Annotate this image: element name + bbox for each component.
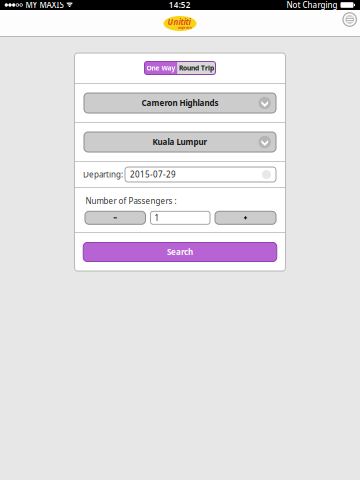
button[interactable]: Round Trip [177,61,215,74]
button[interactable] [215,211,276,224]
staticText: 2015-07-29 [130,169,176,180]
staticText: Not Charging [286,0,337,10]
button[interactable] [85,211,145,224]
button[interactable]: One Way [144,61,177,74]
staticText: MY MAXIS [25,0,63,10]
staticText: Unititi [167,17,190,27]
button[interactable]: Menu [343,16,360,30]
staticText: 14:52 [169,0,191,10]
staticText: Departing: [83,169,123,180]
staticText: express [178,24,192,30]
staticText: 1 [154,212,159,223]
button[interactable]: 2015-07-29 [125,167,276,182]
staticText: Cameron Highlands [141,98,218,108]
staticText: One Way [146,64,175,72]
staticText: Kuala Lumpur [152,137,207,147]
staticText: Search [167,247,193,257]
button[interactable]: Cameron Highlands [74,84,285,122]
button[interactable]: Search [74,233,285,271]
staticText: Number of Passengers : [85,196,176,206]
button[interactable]: Kuala Lumpur [74,123,285,161]
staticText: Round Trip [179,64,214,72]
